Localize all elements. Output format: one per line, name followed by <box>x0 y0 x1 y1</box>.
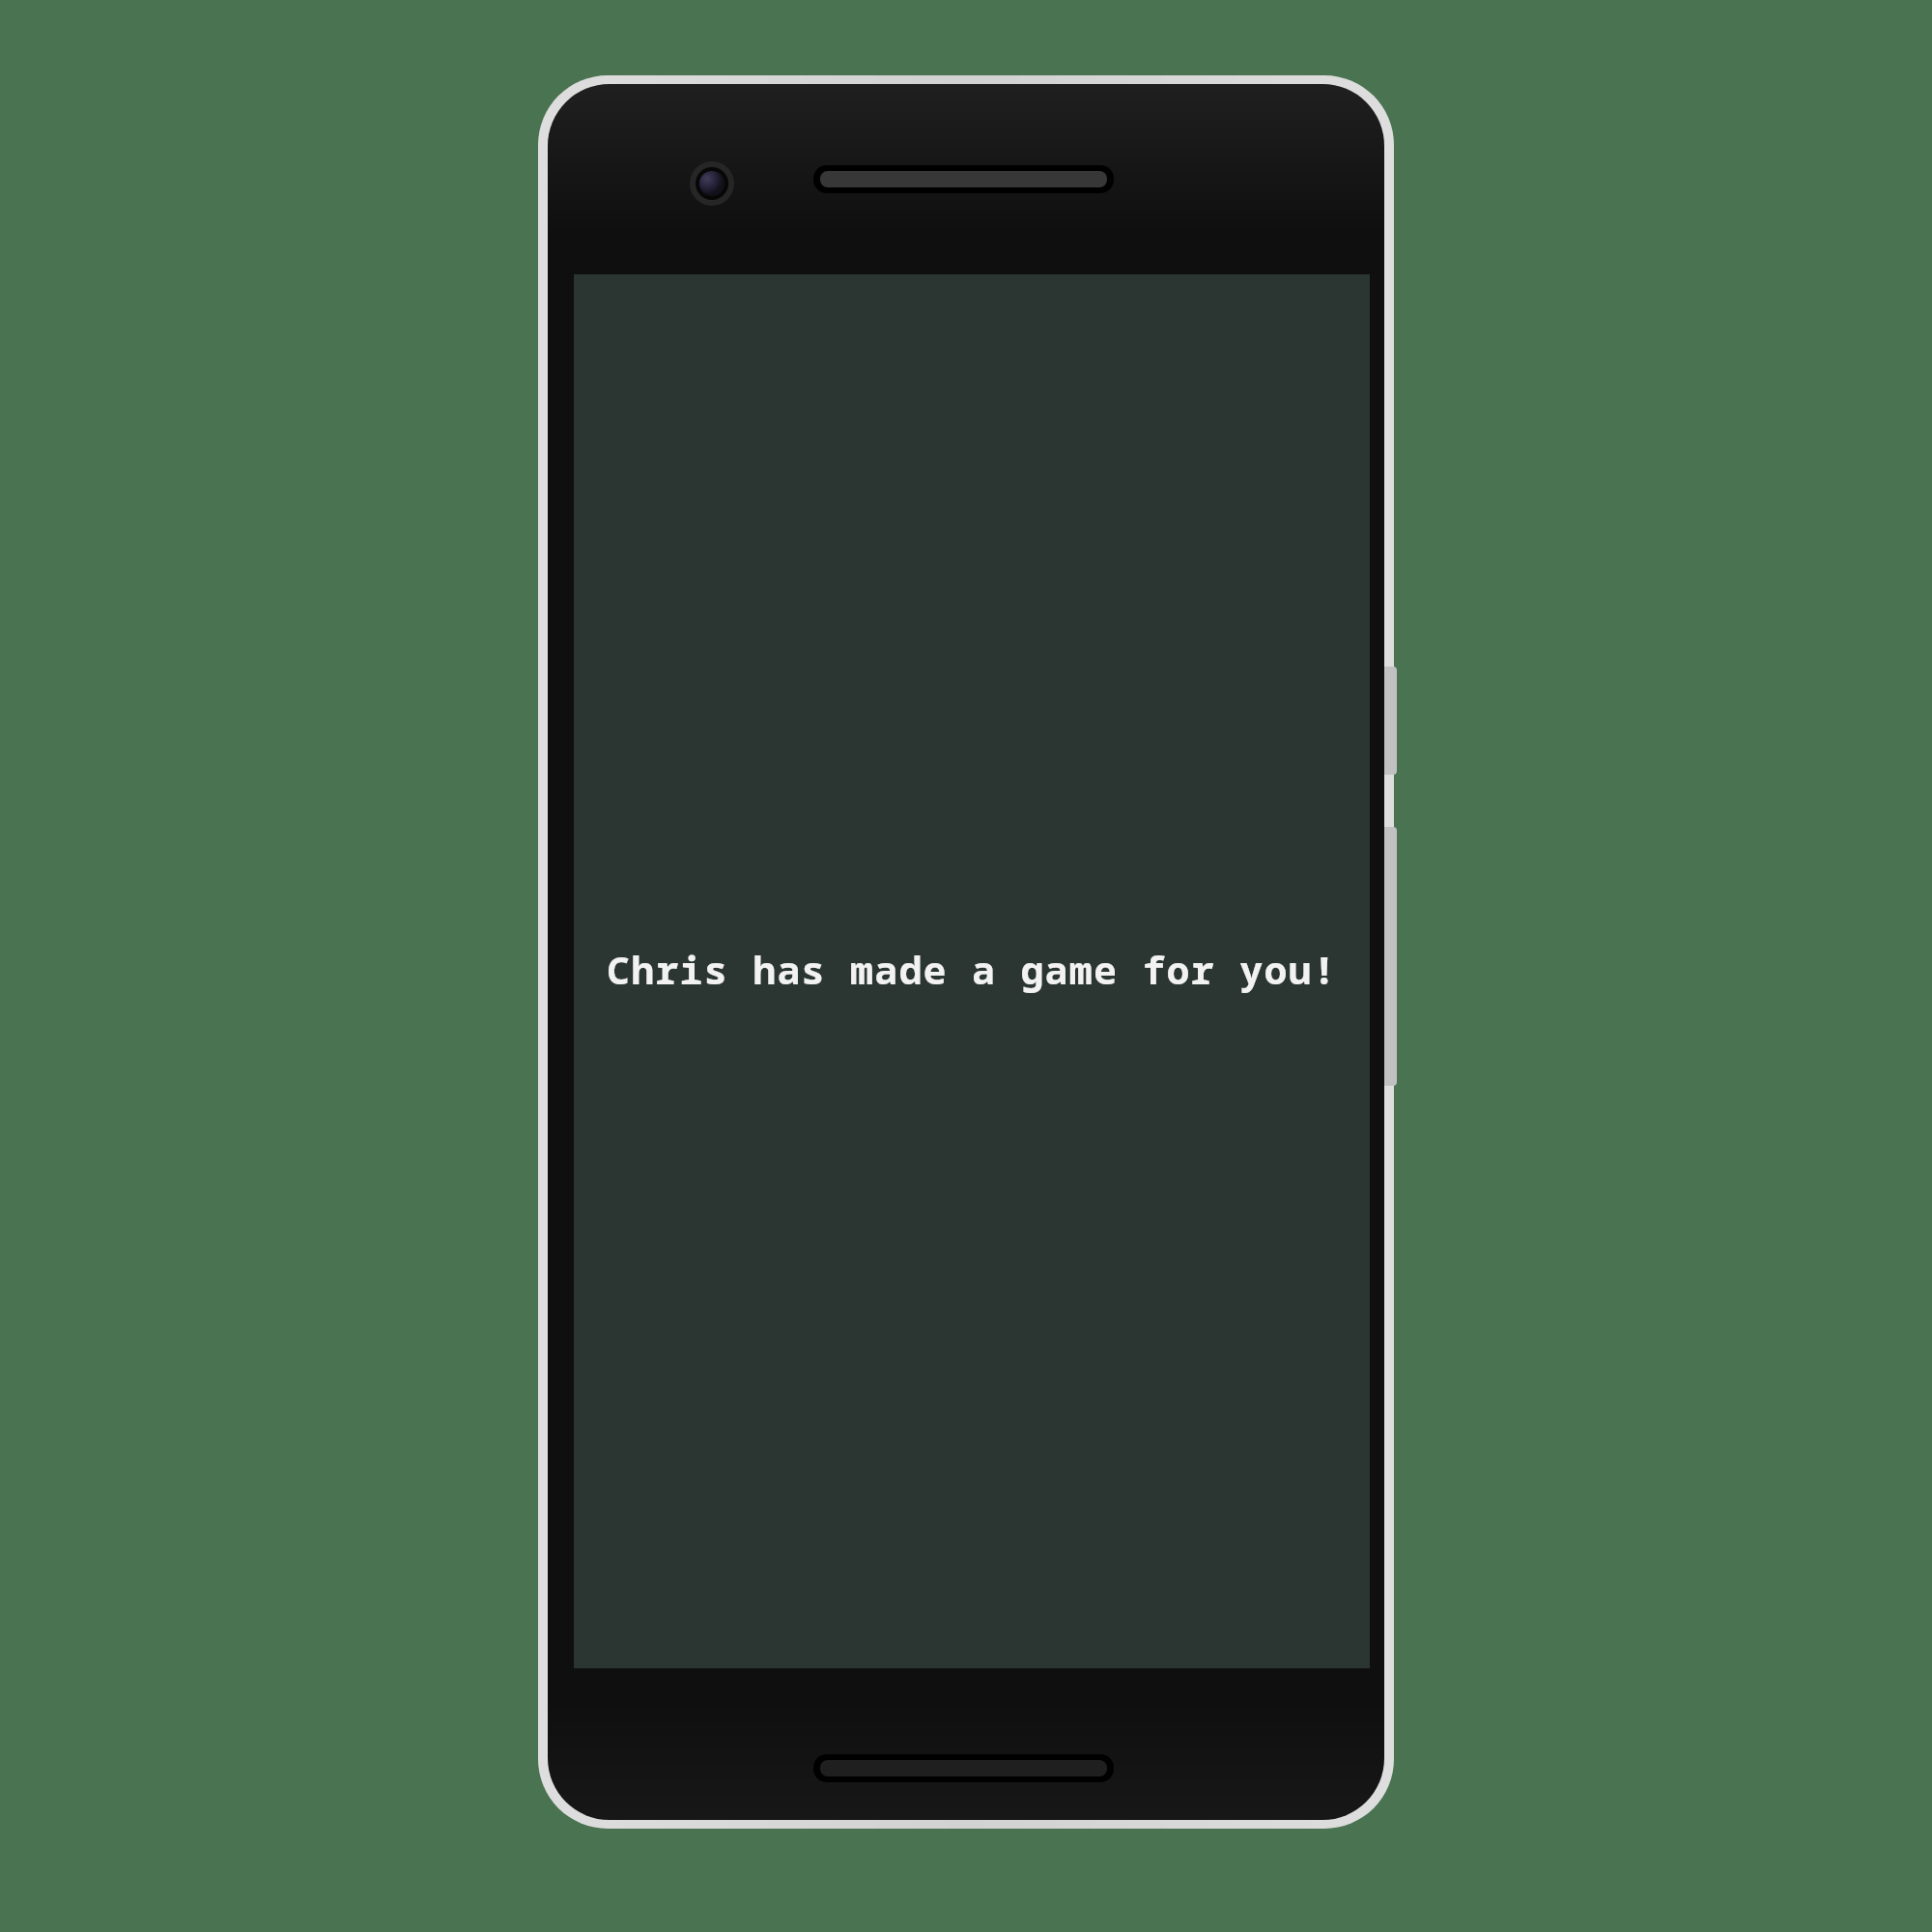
staticText: Chris has made a game for you! <box>607 943 1337 995</box>
button[interactable]: Chris has made a game for you! <box>0 0 1932 1932</box>
